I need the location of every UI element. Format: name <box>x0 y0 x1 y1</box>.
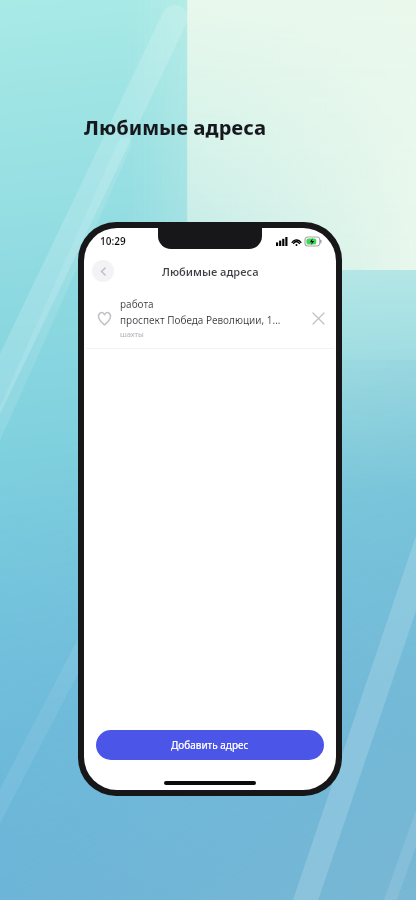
staticText: работа <box>120 297 154 311</box>
staticText: Любимые адреса <box>162 264 259 279</box>
other: Избранное <box>94 308 114 328</box>
button[interactable]: Назад <box>92 260 114 282</box>
staticText: Любимые адреса <box>84 114 267 141</box>
button[interactable]: Удалить <box>306 306 330 330</box>
staticText: шахты <box>120 329 144 339</box>
staticText: Добавить адрес <box>171 738 249 752</box>
button[interactable]: Добавить адрес <box>96 730 324 760</box>
staticText: 10:29 <box>100 234 126 248</box>
staticText: проспект Победа Революции, 1... <box>120 313 281 327</box>
button[interactable]: Избранное <box>84 288 336 348</box>
